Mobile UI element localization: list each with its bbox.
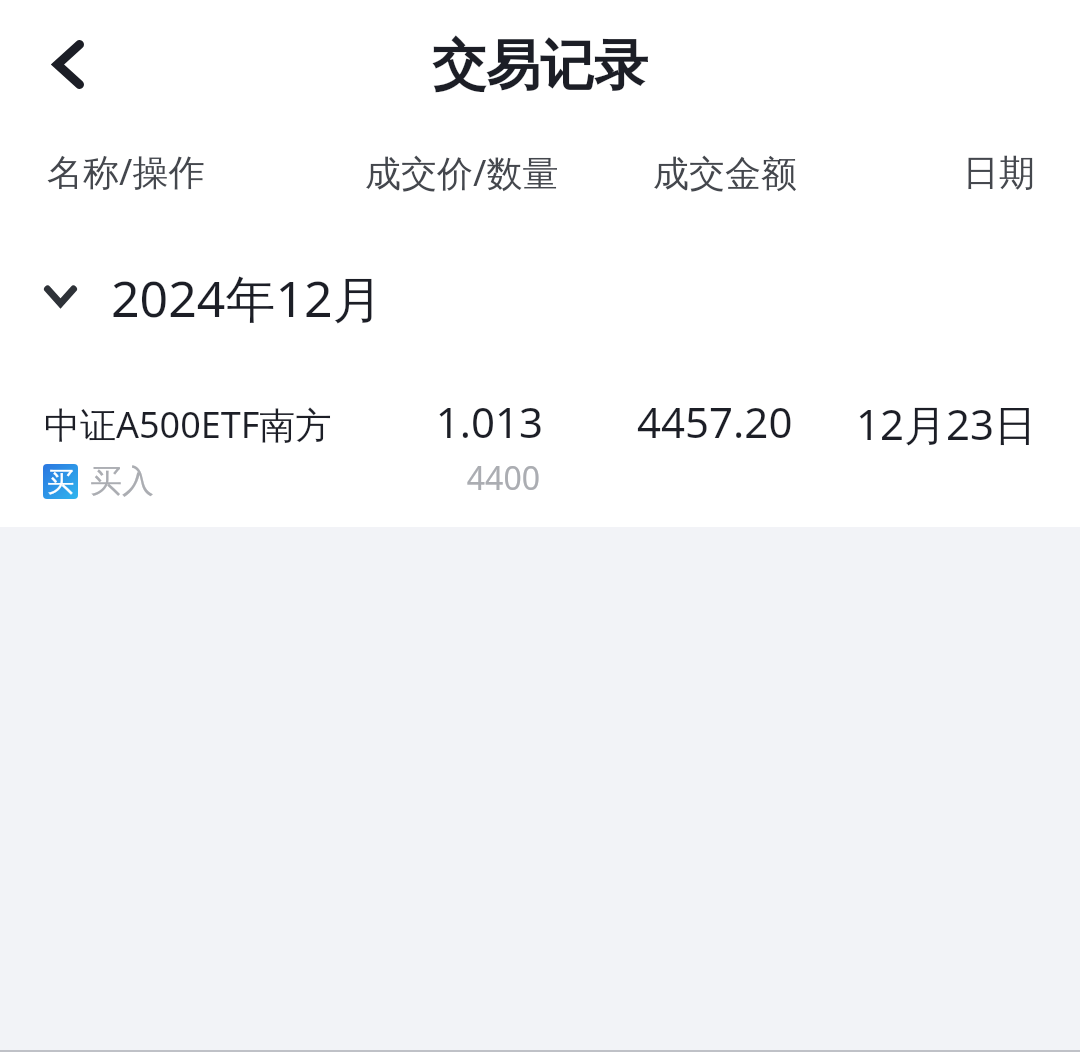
staticText: 交易记录 — [0, 32, 1080, 100]
staticText: 成交价/数量 — [365, 148, 559, 197]
staticText: 12月23日 — [856, 395, 1037, 452]
staticText: 买 — [47, 465, 74, 499]
staticText: 买入 — [90, 461, 154, 501]
button[interactable]: 中证A500ETF南方 — [0, 370, 1080, 527]
staticText: 1.013 — [340, 393, 543, 450]
staticText: 2024年12月 — [111, 264, 383, 332]
button[interactable]: Back — [30, 26, 106, 102]
staticText: 成交金额 — [653, 151, 797, 196]
staticText: 4457.20 — [637, 393, 793, 450]
staticText: 名称/操作 — [47, 147, 205, 196]
staticText: 日期 — [963, 150, 1035, 195]
staticText: 4400 — [337, 456, 540, 500]
staticText: 中证A500ETF南方 — [44, 400, 332, 449]
button[interactable]: 2024年12月 — [0, 258, 1080, 338]
